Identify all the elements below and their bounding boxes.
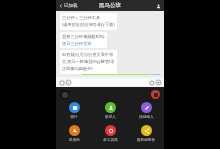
button[interactable]: 想看三分钟视频教程吗: xyxy=(60,32,107,48)
staticText: 黑马三分钟学堂 xyxy=(62,41,92,46)
button[interactable]: More xyxy=(155,79,162,86)
button[interactable]: 已加载 xyxy=(58,2,79,10)
button[interactable]: 群工具箱 xyxy=(92,124,128,144)
button[interactable]: 如有疑问,可自行查文章中留 xyxy=(60,50,117,74)
staticText: 想看三分钟视频教程吗: xyxy=(62,34,105,40)
staticText: 群工具箱 xyxy=(103,138,118,143)
staticText: 已加载 xyxy=(64,3,78,9)
staticText: 快捷输入 xyxy=(139,115,154,120)
staticText: 三分钟 + 三分钟工具 xyxy=(62,15,101,21)
button[interactable]: Voice message xyxy=(65,79,72,86)
button[interactable]: Contact info xyxy=(154,2,162,10)
button[interactable]: 照片 xyxy=(56,101,92,121)
staticText: 联系人 xyxy=(105,115,116,120)
staticText: 推荐能销售 xyxy=(137,138,155,143)
staticText: 群发助 xyxy=(69,138,80,143)
button[interactable]: Keyboard xyxy=(58,79,65,86)
button[interactable]: Emoji xyxy=(148,79,155,86)
button[interactable]: 快捷输入 xyxy=(128,101,164,121)
staticText: 言,黑马一般懂别的会解答(非 xyxy=(62,59,115,65)
button[interactable]: 群发助 xyxy=(56,124,92,144)
staticText: 正能量问题除外) xyxy=(62,66,93,72)
button[interactable]: 推荐能销售 xyxy=(128,124,164,144)
staticText: 黑马公班 xyxy=(99,2,121,9)
button[interactable]: 三分钟 + 三分钟工具 xyxy=(60,13,117,30)
button[interactable]: 联系人 xyxy=(92,101,128,121)
staticText: 照片 xyxy=(70,115,78,120)
staticText: 如有疑问,可自行查文章中留 xyxy=(62,52,114,58)
button[interactable]: Profile xyxy=(60,90,69,99)
staticText: (请用对应对应编号进行下载) xyxy=(62,22,115,28)
button[interactable]: Record xyxy=(151,90,160,99)
